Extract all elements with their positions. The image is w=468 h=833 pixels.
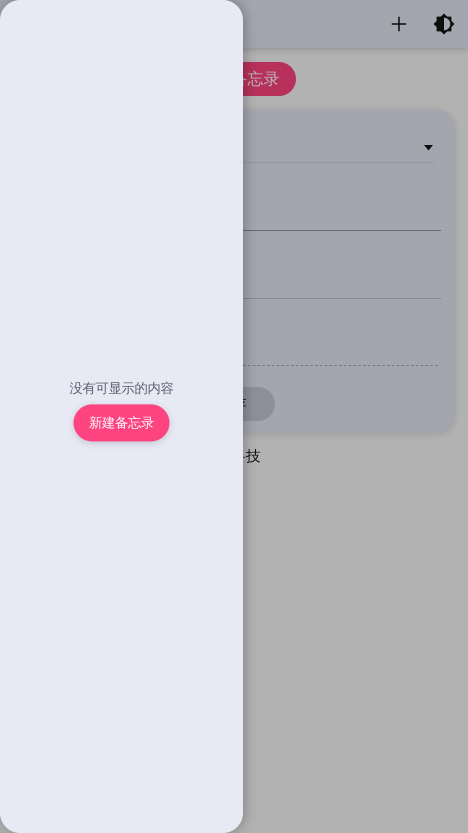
staticText: 科技 [231,447,261,465]
staticText: 没有可显示的内容 [69,380,173,396]
button[interactable]: 新建备忘录 [73,404,169,441]
button[interactable]: New item [376,0,422,48]
button[interactable]: 保存 [189,387,275,421]
staticText: 保存 [217,395,247,413]
button[interactable]: 备忘录 [215,62,296,96]
staticText: 新建备忘录 [89,415,154,431]
staticText: 备忘录 [231,69,279,89]
button[interactable]: Appearance [422,0,466,48]
